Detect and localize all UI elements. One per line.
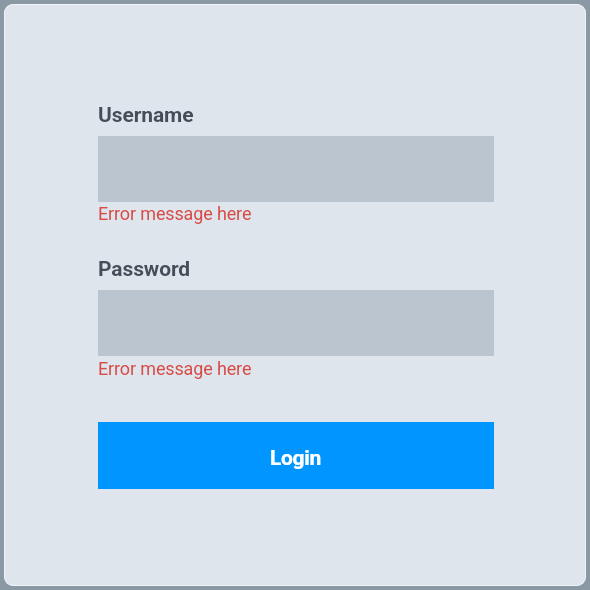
staticText: Error message here	[98, 358, 252, 379]
staticText: Error message here	[98, 203, 252, 224]
staticText: Login	[270, 446, 322, 471]
staticText: Username	[98, 103, 194, 128]
button[interactable]: Login	[98, 422, 494, 489]
staticText: Password	[98, 257, 191, 282]
